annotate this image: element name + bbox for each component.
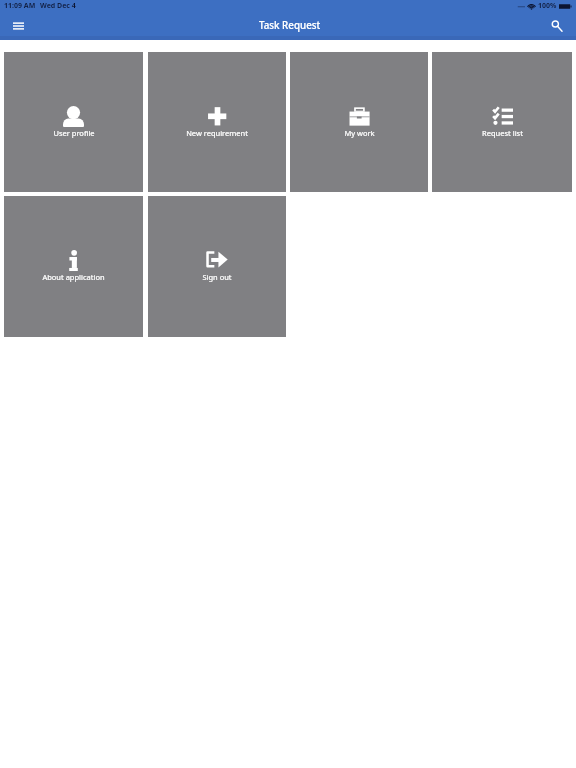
staticText: About application (42, 272, 105, 282)
staticText: Task Request (259, 19, 321, 32)
staticText: 100% (538, 1, 557, 11)
button[interactable]: Request list (432, 52, 572, 192)
staticText: 11:09 AM (4, 1, 36, 11)
button[interactable]: New requirement (148, 52, 286, 192)
button[interactable]: Sign out (148, 196, 286, 337)
button[interactable]: Open navigation menu (6, 14, 30, 38)
staticText: Sign out (202, 272, 232, 282)
staticText: New requirement (186, 128, 248, 138)
button[interactable]: User profile (4, 52, 143, 192)
staticText: Request list (482, 128, 523, 138)
button[interactable]: About application (4, 196, 143, 337)
button[interactable]: Search (545, 14, 569, 38)
button[interactable]: My work (290, 52, 428, 192)
staticText: My work (344, 128, 375, 138)
staticText: User profile (53, 128, 95, 138)
staticText: Wed Dec 4 (40, 1, 76, 11)
